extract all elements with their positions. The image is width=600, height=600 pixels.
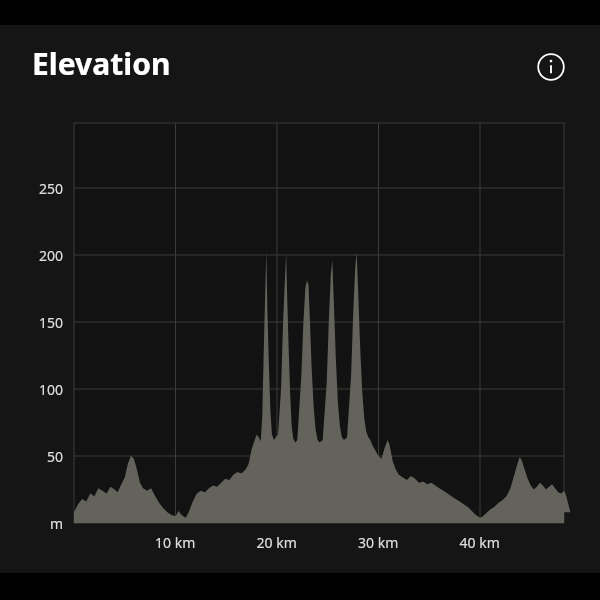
staticText: Elevation	[32, 43, 171, 84]
button[interactable]: Information about elevation	[527, 43, 575, 91]
button[interactable]: Elevation	[32, 43, 171, 84]
